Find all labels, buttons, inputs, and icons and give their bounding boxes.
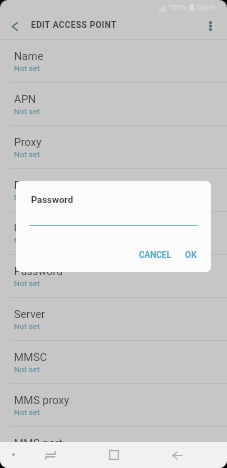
staticText: Name [14, 50, 44, 63]
button[interactable]: Navigate up [3, 15, 25, 37]
staticText: Port [14, 179, 35, 192]
button[interactable]: Port [0, 169, 227, 212]
staticText: APN [14, 93, 36, 106]
button[interactable]: MMS port [0, 427, 227, 468]
button[interactable]: Home [101, 442, 127, 468]
staticText: MMSC [14, 351, 47, 364]
staticText: Password [14, 265, 63, 278]
staticText: OK [185, 250, 197, 260]
staticText: MMS proxy [14, 394, 70, 407]
button[interactable]: MMSC [0, 341, 227, 384]
staticText: Not set [14, 322, 40, 331]
staticText: Username [14, 222, 64, 235]
staticText: Not set [14, 64, 40, 73]
staticText: Not set [14, 451, 40, 460]
button[interactable]: Recent apps [37, 442, 63, 468]
staticText: Not set [14, 365, 40, 374]
staticText: CANCEL [139, 250, 172, 260]
button[interactable]: OK [180, 246, 202, 264]
button[interactable]: Username [0, 212, 227, 255]
staticText: Not set [14, 236, 40, 245]
staticText: Not set [14, 193, 40, 202]
staticText: Not set [14, 279, 40, 288]
staticText: Not set [14, 150, 40, 159]
button[interactable]: Proxy [0, 126, 227, 169]
button[interactable]: Password [0, 255, 227, 298]
button[interactable]: Server [0, 298, 227, 341]
staticText: Not set [14, 107, 40, 116]
button[interactable]: Name [0, 40, 227, 83]
button[interactable]: Back [164, 442, 190, 468]
staticText: MMS port [14, 437, 63, 450]
button[interactable]: More options [199, 15, 221, 37]
staticText: 100% [168, 3, 187, 12]
staticText: Server [14, 308, 46, 321]
button[interactable]: MMS proxy [0, 384, 227, 427]
staticText: 10:00 [196, 3, 215, 12]
staticText: EDIT ACCESS POINT [31, 20, 117, 30]
button[interactable]: APN [0, 83, 227, 126]
staticText: Proxy [14, 136, 42, 149]
button[interactable]: CANCEL [134, 246, 177, 264]
staticText: Not set [14, 408, 40, 417]
staticText: Password [31, 194, 74, 205]
